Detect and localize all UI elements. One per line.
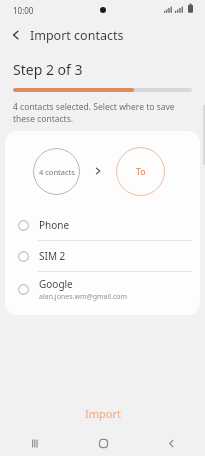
button[interactable]: Phone (5, 210, 200, 240)
staticText: Step 2 of 3 (13, 60, 83, 79)
staticText: alan.jones.wm@gmail.com (39, 292, 128, 302)
staticText: Phone (39, 218, 70, 232)
button[interactable]: SIM 2 (5, 241, 200, 271)
button[interactable]: 4 contacts (33, 148, 80, 195)
button[interactable]: To (116, 147, 165, 196)
button[interactable]: Back (7, 26, 25, 44)
button[interactable]: Recent apps (0, 430, 69, 456)
staticText: Google (39, 277, 73, 291)
staticText: Import contacts (30, 27, 124, 44)
staticText: Import (85, 406, 121, 421)
staticText: 4 contacts (39, 167, 75, 177)
button[interactable]: Home (69, 430, 137, 456)
staticText: 10:00 (13, 5, 34, 16)
staticText: SIM 2 (39, 249, 66, 263)
staticText: 4 contacts selected. Select where to sav… (13, 101, 175, 125)
staticText: To (136, 166, 146, 178)
button[interactable]: Google (5, 272, 200, 306)
button[interactable]: Import (0, 396, 205, 430)
button[interactable]: Back (137, 430, 205, 456)
